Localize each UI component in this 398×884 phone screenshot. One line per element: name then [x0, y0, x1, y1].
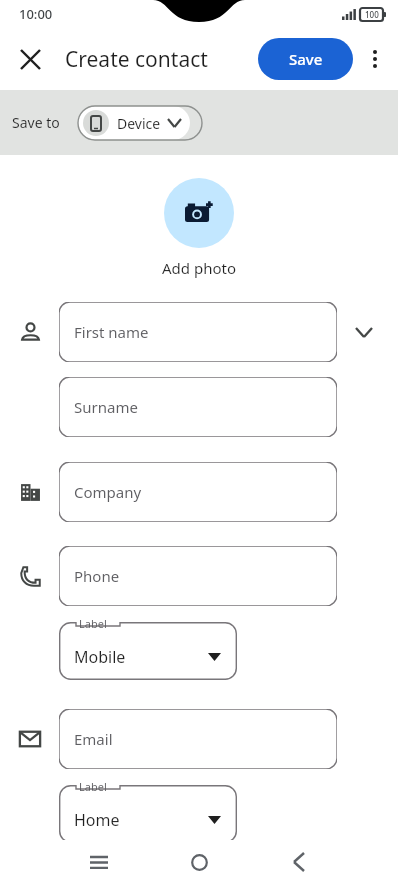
staticText: Home [74, 809, 120, 831]
button[interactable]: Phone [59, 546, 337, 606]
staticText: First name [74, 322, 149, 342]
staticText: Mobile [74, 646, 126, 668]
button[interactable]: Close [8, 37, 52, 81]
staticText: Label [79, 616, 107, 631]
button[interactable]: Label [59, 785, 237, 843]
button[interactable]: Save [258, 38, 353, 80]
button[interactable]: Surname [59, 377, 337, 437]
button[interactable]: Label [59, 622, 237, 680]
button[interactable]: Home [178, 841, 220, 883]
button[interactable]: Add photo [164, 178, 234, 248]
button[interactable]: Company [59, 462, 337, 522]
button[interactable]: More options [354, 38, 396, 80]
staticText: Label [79, 779, 107, 794]
staticText: Surname [74, 397, 138, 417]
staticText: Create contact [65, 45, 208, 74]
staticText: 10:00 [19, 5, 53, 23]
button[interactable]: Recent apps [78, 841, 120, 883]
other: Open label menu [207, 813, 221, 827]
staticText: Save [289, 49, 323, 69]
button[interactable]: First name [59, 302, 337, 362]
staticText: Phone [74, 566, 120, 586]
staticText: 100 [365, 9, 379, 20]
button[interactable]: Device [78, 106, 190, 140]
staticText: Device [117, 114, 161, 133]
button[interactable]: Email [59, 709, 337, 769]
staticText: Company [74, 482, 142, 502]
button[interactable]: Back [278, 841, 320, 883]
button[interactable]: Expand name fields [348, 316, 380, 348]
staticText: Email [74, 729, 113, 749]
staticText: Save to [12, 113, 60, 132]
button[interactable]: Add photo [162, 258, 236, 278]
other: Open label menu [207, 650, 221, 664]
